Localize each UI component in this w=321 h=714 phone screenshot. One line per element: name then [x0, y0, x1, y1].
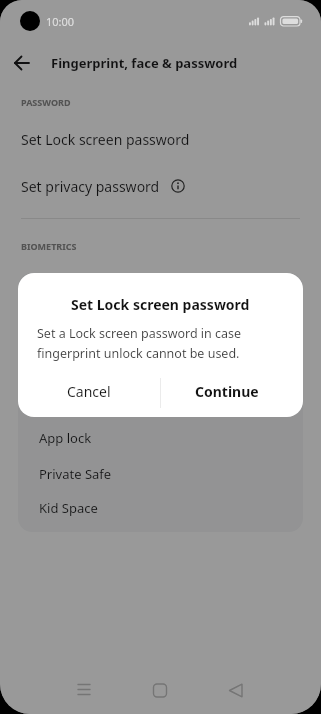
button[interactable]: [225, 679, 247, 701]
button[interactable]: App lock: [39, 426, 92, 450]
staticText: fingerprint unlock cannot be used.: [37, 345, 240, 362]
button[interactable]: Continue: [156, 367, 298, 415]
button[interactable]: Set Lock screen password: [21, 127, 190, 151]
button[interactable]: [149, 679, 171, 701]
staticText: Continue: [195, 382, 259, 401]
button[interactable]: Kid Space: [39, 496, 98, 520]
button[interactable]: Cancel: [18, 367, 160, 415]
staticText: Set Lock screen password: [71, 295, 250, 314]
staticText: App lock: [39, 429, 92, 447]
button[interactable]: Private Safe: [39, 462, 112, 486]
staticText: Cancel: [67, 382, 111, 401]
staticText: Private Safe: [39, 465, 112, 483]
button[interactable]: Set privacy password: [21, 174, 160, 198]
staticText: BIOMETRICS: [21, 240, 77, 252]
button[interactable]: [8, 49, 36, 77]
staticText: Set privacy password: [21, 177, 160, 196]
staticText: Set a Lock screen password in case: [37, 325, 242, 342]
button[interactable]: [73, 679, 95, 701]
staticText: Fingerprint, face & password: [51, 54, 238, 72]
staticText: PASSWORD: [21, 96, 71, 108]
staticText: Kid Space: [39, 499, 98, 517]
staticText: 10:00: [46, 14, 75, 29]
staticText: Set Lock screen password: [21, 130, 190, 149]
